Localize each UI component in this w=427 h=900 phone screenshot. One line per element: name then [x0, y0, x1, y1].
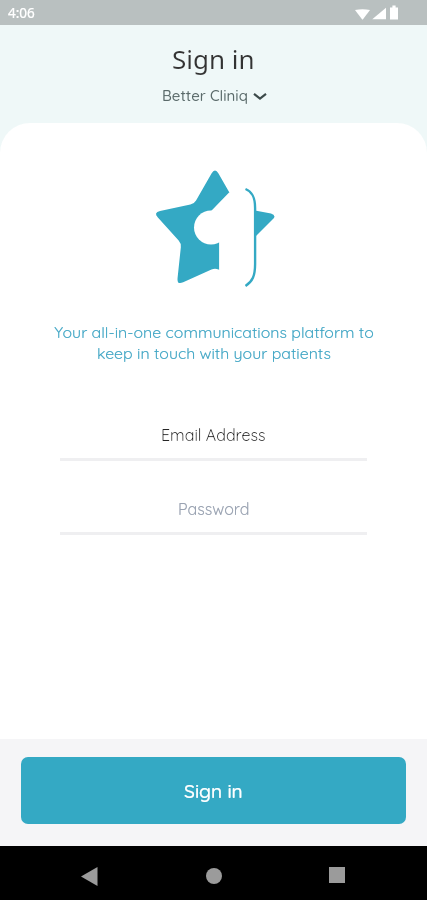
button[interactable]: Password	[60, 499, 367, 535]
staticText: Sign in	[184, 779, 243, 803]
button[interactable]: Recents	[314, 852, 359, 897]
staticText: Better Cliniq	[162, 86, 248, 105]
staticText: Password	[178, 499, 250, 519]
staticText: 4:06	[8, 4, 35, 22]
button[interactable]: Email Address	[60, 425, 367, 461]
button[interactable]: Better Cliniq	[156, 84, 272, 107]
button[interactable]: Back	[67, 854, 112, 899]
button[interactable]: Sign in	[21, 757, 406, 824]
staticText: Your all-in-one communications platform …	[54, 322, 374, 363]
staticText: Email Address	[161, 425, 266, 445]
button[interactable]: Home	[191, 853, 236, 898]
staticText: Sign in	[172, 41, 255, 76]
